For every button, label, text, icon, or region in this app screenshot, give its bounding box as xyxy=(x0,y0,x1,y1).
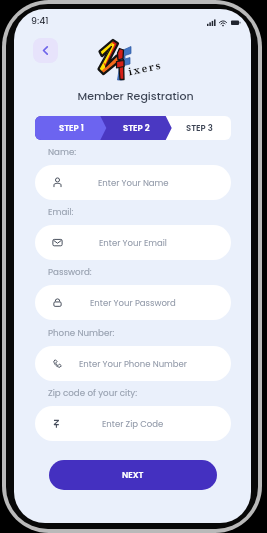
button[interactable]: Back xyxy=(33,38,58,63)
staticText: Enter Your Password xyxy=(90,297,176,309)
button[interactable]: Enter Your Name xyxy=(35,165,231,200)
button[interactable]: STEP 2 xyxy=(101,116,166,140)
staticText: Phone Number: xyxy=(48,327,115,339)
staticText: Zip code of your city: xyxy=(48,387,138,399)
button[interactable]: Enter Your Phone Number xyxy=(35,346,231,381)
button[interactable]: Enter Zip Code xyxy=(35,406,231,441)
staticText: Enter Your Phone Number xyxy=(79,358,187,370)
staticText: ixers xyxy=(127,57,164,78)
staticText: Password: xyxy=(48,266,92,278)
button[interactable]: STEP 3 xyxy=(166,116,231,140)
staticText: Enter Your Name xyxy=(98,177,169,189)
button[interactable]: Enter Your Email xyxy=(35,225,231,260)
staticText: STEP 3 xyxy=(186,122,213,134)
button[interactable]: Enter Your Password xyxy=(35,285,231,320)
staticText: 9:41 xyxy=(31,14,49,27)
staticText: Name: xyxy=(48,146,77,158)
staticText: STEP 2 xyxy=(123,122,150,134)
staticText: Enter Your Email xyxy=(99,237,167,249)
staticText: NEXT xyxy=(122,469,144,481)
staticText: Member Registration xyxy=(17,88,251,103)
button[interactable]: STEP 1 xyxy=(35,116,101,140)
button[interactable]: NEXT xyxy=(49,460,217,490)
staticText: Email: xyxy=(48,206,74,218)
staticText: Enter Zip Code xyxy=(102,418,164,430)
staticText: STEP 1 xyxy=(59,122,84,134)
